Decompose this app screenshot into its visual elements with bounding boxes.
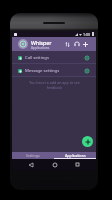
button[interactable]: Add application — [82, 136, 93, 147]
button[interactable]: Whisper — [12, 37, 96, 51]
staticText: Applications — [65, 153, 86, 158]
button[interactable]: Message settings — [12, 64, 96, 77]
staticText: Whisper — [31, 39, 52, 46]
button[interactable]: Sort — [63, 37, 72, 51]
staticText: You have to add an app to see feedback — [29, 80, 80, 90]
button[interactable]: Applications — [54, 152, 96, 159]
button[interactable]: Call settings — [12, 51, 96, 64]
button[interactable]: Add — [81, 37, 90, 51]
staticText: Call settings — [25, 55, 49, 61]
staticText: Message settings — [25, 68, 60, 74]
button[interactable]: Recents — [72, 159, 83, 170]
button[interactable]: Settings — [12, 152, 54, 159]
staticText: Settings — [26, 153, 40, 158]
button[interactable]: Back — [25, 159, 36, 170]
staticText: Applications — [31, 46, 50, 50]
button[interactable]: Home — [49, 159, 60, 170]
button[interactable]: Headphones — [72, 37, 81, 51]
staticText: 1:00 — [83, 32, 91, 37]
